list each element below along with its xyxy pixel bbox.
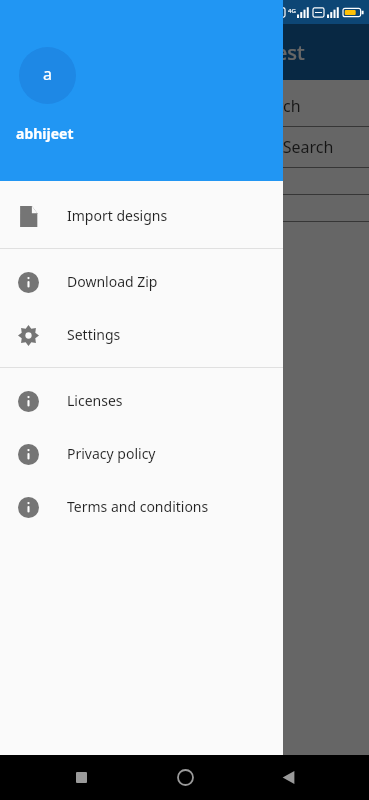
staticText: 2 bbox=[250, 171, 259, 191]
staticText: Settings bbox=[67, 325, 121, 344]
button[interactable]: Privacy policy bbox=[0, 427, 283, 480]
staticText: Terms and conditions bbox=[67, 497, 209, 516]
button[interactable]: Import designs bbox=[0, 189, 283, 242]
staticText: Search bbox=[250, 95, 301, 117]
staticText: Import designs bbox=[67, 206, 168, 225]
button[interactable]: 2 bbox=[0, 195, 369, 221]
staticText: Privacy policy bbox=[67, 444, 156, 463]
staticText: Sub Search bbox=[250, 136, 334, 158]
button[interactable]: Recent apps bbox=[58, 755, 104, 800]
staticText: Download Zip bbox=[67, 272, 158, 291]
button[interactable]: Sub Search bbox=[0, 127, 369, 167]
button[interactable]: a bbox=[0, 0, 283, 181]
staticText: Test bbox=[266, 39, 305, 66]
staticText: abhijeet bbox=[16, 124, 74, 143]
button[interactable]: 2 bbox=[0, 168, 369, 194]
button[interactable]: Licenses bbox=[0, 374, 283, 427]
button[interactable]: Terms and conditions bbox=[0, 480, 283, 533]
staticText: a bbox=[43, 63, 52, 85]
staticText: 4G bbox=[288, 7, 296, 15]
button[interactable]: Back bbox=[265, 755, 311, 800]
button[interactable]: Home bbox=[162, 755, 208, 800]
staticText: Licenses bbox=[67, 391, 123, 410]
button[interactable]: Download Zip bbox=[0, 255, 283, 308]
button[interactable]: Settings bbox=[0, 308, 283, 361]
button[interactable]: Search bbox=[0, 86, 369, 126]
